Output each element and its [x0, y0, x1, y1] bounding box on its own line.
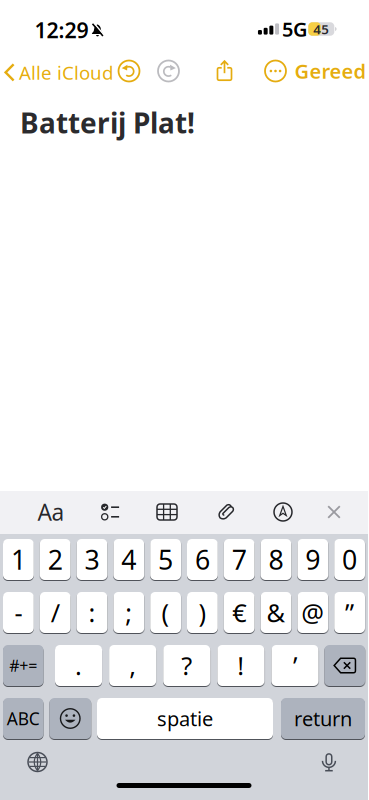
staticText: Batterij Plat! [20, 104, 195, 141]
button[interactable]: 2 [40, 539, 71, 580]
staticText: 5 [158, 542, 173, 577]
staticText: 5G [282, 16, 308, 42]
staticText: & [266, 596, 285, 629]
staticText: 3 [84, 542, 99, 577]
staticText: / [51, 596, 60, 629]
button[interactable]: Emoji [49, 698, 91, 739]
staticText: ABC [7, 707, 40, 730]
button[interactable]: return [281, 698, 365, 739]
staticText: spatie [157, 705, 213, 732]
button[interactable]: 7 [224, 539, 255, 580]
staticText: 2 [48, 542, 63, 577]
staticText: ; [125, 596, 132, 629]
staticText: ” [345, 596, 354, 629]
button[interactable]: ’ [271, 645, 318, 686]
button[interactable]: Markup [273, 502, 292, 521]
staticText: ? [181, 649, 192, 682]
button[interactable]: 8 [261, 539, 291, 580]
button[interactable]: ) [187, 592, 218, 633]
button[interactable]: Next keyboard [27, 752, 47, 772]
button[interactable]: ! [217, 645, 264, 686]
button[interactable]: Undo [117, 59, 141, 83]
button[interactable]: Attach [217, 503, 234, 520]
button[interactable]: 4 [113, 539, 144, 580]
button[interactable]: 6 [187, 539, 218, 580]
staticText: ( [162, 596, 170, 629]
staticText: ’ [293, 649, 297, 682]
button[interactable]: Gereed [294, 58, 366, 84]
staticText: @ [301, 596, 324, 629]
button[interactable]: Dismiss keyboard [327, 505, 340, 518]
button[interactable]: Checklist [100, 503, 119, 521]
staticText: 4 [121, 542, 136, 577]
button[interactable]: @ [297, 592, 328, 633]
staticText: 6 [195, 542, 210, 577]
button[interactable]: Delete [324, 645, 365, 686]
button[interactable]: Redo [156, 59, 180, 83]
staticText: 12:29 [34, 16, 88, 44]
staticText: 45 [313, 20, 329, 38]
staticText: . [75, 649, 82, 682]
button[interactable]: : [77, 592, 107, 633]
staticText: 1 [11, 542, 26, 577]
button[interactable]: Alle iCloud [4, 60, 113, 85]
button[interactable]: ABC [3, 698, 43, 739]
button[interactable]: ; [113, 592, 144, 633]
button[interactable]: / [40, 592, 71, 633]
button[interactable]: 9 [297, 539, 328, 580]
button[interactable]: 5 [150, 539, 181, 580]
button[interactable]: . [55, 645, 102, 686]
staticText: ! [237, 649, 244, 682]
button[interactable]: Format [37, 497, 64, 527]
button[interactable]: spatie [97, 698, 273, 739]
button[interactable]: & [261, 592, 291, 633]
button[interactable]: ( [150, 592, 181, 633]
button[interactable]: #+= [3, 645, 43, 686]
staticText: 9 [305, 542, 320, 577]
staticText: ) [198, 596, 206, 629]
staticText: Aa [37, 497, 64, 527]
button[interactable]: - [3, 592, 34, 633]
button[interactable]: Share [216, 60, 232, 81]
button[interactable]: 3 [77, 539, 107, 580]
staticText: 0 [342, 542, 357, 577]
staticText: #+= [9, 655, 37, 676]
button[interactable]: Table [156, 503, 177, 520]
staticText: 8 [268, 542, 283, 577]
staticText: Gereed [294, 58, 366, 84]
button[interactable]: ? [163, 645, 210, 686]
staticText: : [88, 596, 95, 629]
staticText: return [294, 705, 352, 732]
button[interactable]: , [109, 645, 156, 686]
staticText: , [129, 649, 136, 682]
button[interactable]: € [224, 592, 255, 633]
button[interactable]: Dictate [322, 752, 336, 771]
button[interactable]: More [263, 59, 287, 83]
button[interactable]: 0 [334, 539, 365, 580]
staticText: - [14, 596, 22, 629]
staticText: Alle iCloud [19, 60, 113, 85]
staticText: 7 [232, 542, 247, 577]
button[interactable]: ” [334, 592, 365, 633]
staticText: € [232, 596, 246, 629]
button[interactable]: 1 [3, 539, 34, 580]
